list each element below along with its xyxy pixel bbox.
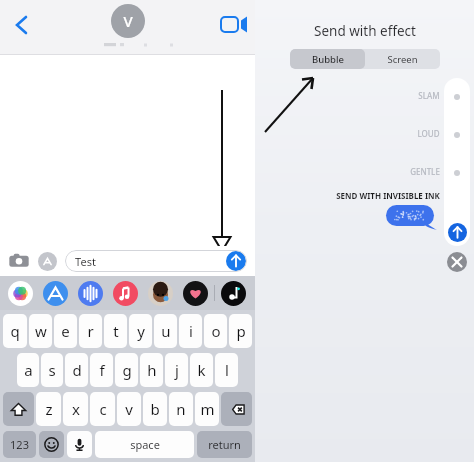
staticText: Bubble [312,53,344,66]
button[interactable]: Back [6,13,36,43]
staticText: j [175,360,179,380]
button[interactable]: v [117,392,141,426]
staticText: f [99,360,105,380]
button[interactable]: g [115,353,138,387]
staticText: SLAM [418,90,440,101]
button[interactable]: s [41,353,63,387]
button[interactable]: App [113,281,138,306]
button[interactable]: Screen [365,49,440,69]
button[interactable]: x [63,392,88,426]
button[interactable]: f [90,353,113,387]
button[interactable]: App [43,281,68,306]
button[interactable]: k [190,353,213,387]
button[interactable]: r [79,314,102,348]
staticText: n [176,399,186,419]
button[interactable]: Test [65,250,247,272]
staticText: Screen [387,53,418,66]
staticText: LOUD [417,128,440,139]
staticText: b [150,399,160,419]
staticText: SEND WITH INVISIBLE INK [336,190,440,201]
button[interactable]: V [98,4,158,48]
staticText: Send with effect [314,22,416,40]
staticText: v [125,399,133,419]
staticText: h [147,360,157,380]
button[interactable]: App [183,281,208,306]
button[interactable]: Close [447,252,467,272]
button[interactable]: space [95,431,194,458]
button[interactable]: o [204,314,227,348]
button[interactable]: Dictation [67,431,92,458]
button[interactable]: p [229,314,252,348]
button[interactable]: SEND WITH INVISIBLE INK [336,190,440,201]
button[interactable]: App Store [38,252,57,271]
button[interactable]: App [148,281,173,306]
staticText: z [45,399,53,419]
button[interactable]: j [165,353,188,387]
staticText: e [61,321,70,341]
button[interactable]: h [140,353,163,387]
button[interactable]: e [54,314,77,348]
button[interactable]: return [197,431,252,458]
button[interactable]: Emoji [39,431,64,458]
staticText: p [236,321,246,341]
button[interactable]: App [78,281,103,306]
button[interactable]: w [29,314,52,348]
staticText: s [48,360,56,380]
staticText: k [197,360,206,380]
button[interactable]: z [36,392,61,426]
button[interactable]: GENTLE [410,166,440,177]
staticText: w [35,321,47,341]
button[interactable]: d [65,353,88,387]
button[interactable]: u [154,314,177,348]
staticText: o [211,321,221,341]
staticText: space [130,437,160,452]
staticText: d [72,360,82,380]
staticText: i [189,321,193,341]
button[interactable]: i [179,314,202,348]
button[interactable]: Backspace [221,392,252,426]
staticText: r [87,321,94,341]
button[interactable]: LOUD [417,128,440,139]
staticText: g [122,360,132,380]
button[interactable]: FaceTime video call [217,10,247,40]
staticText: 123 [10,437,29,452]
staticText: y [137,321,145,341]
button[interactable]: b [143,392,167,426]
button[interactable]: l [215,353,238,387]
button[interactable]: q [3,314,27,348]
staticText: Test [75,254,96,269]
button[interactable]: SLAM [418,90,440,101]
button[interactable]: m [195,392,219,426]
staticText: a [24,360,33,380]
staticText: c [99,399,107,419]
button[interactable]: t [104,314,127,348]
button[interactable]: c [90,392,115,426]
staticText: GENTLE [410,166,440,177]
staticText: l [225,360,229,380]
staticText: x [72,399,80,419]
button[interactable]: Send with effect [448,223,467,242]
button[interactable]: Send [226,251,246,271]
button[interactable]: App [221,281,246,306]
button[interactable]: Camera [8,250,30,272]
staticText: return [208,437,241,452]
staticText: t [113,321,119,341]
staticText: V [123,11,133,31]
button[interactable]: y [129,314,152,348]
button[interactable]: App [8,281,33,306]
staticText: u [161,321,171,341]
button[interactable]: 123 [3,431,36,458]
button[interactable]: Shift [3,392,34,426]
button[interactable]: a [17,353,39,387]
staticText: q [10,321,20,341]
button[interactable]: Bubble [290,49,365,69]
staticText: m [200,399,215,419]
button[interactable]: n [169,392,193,426]
